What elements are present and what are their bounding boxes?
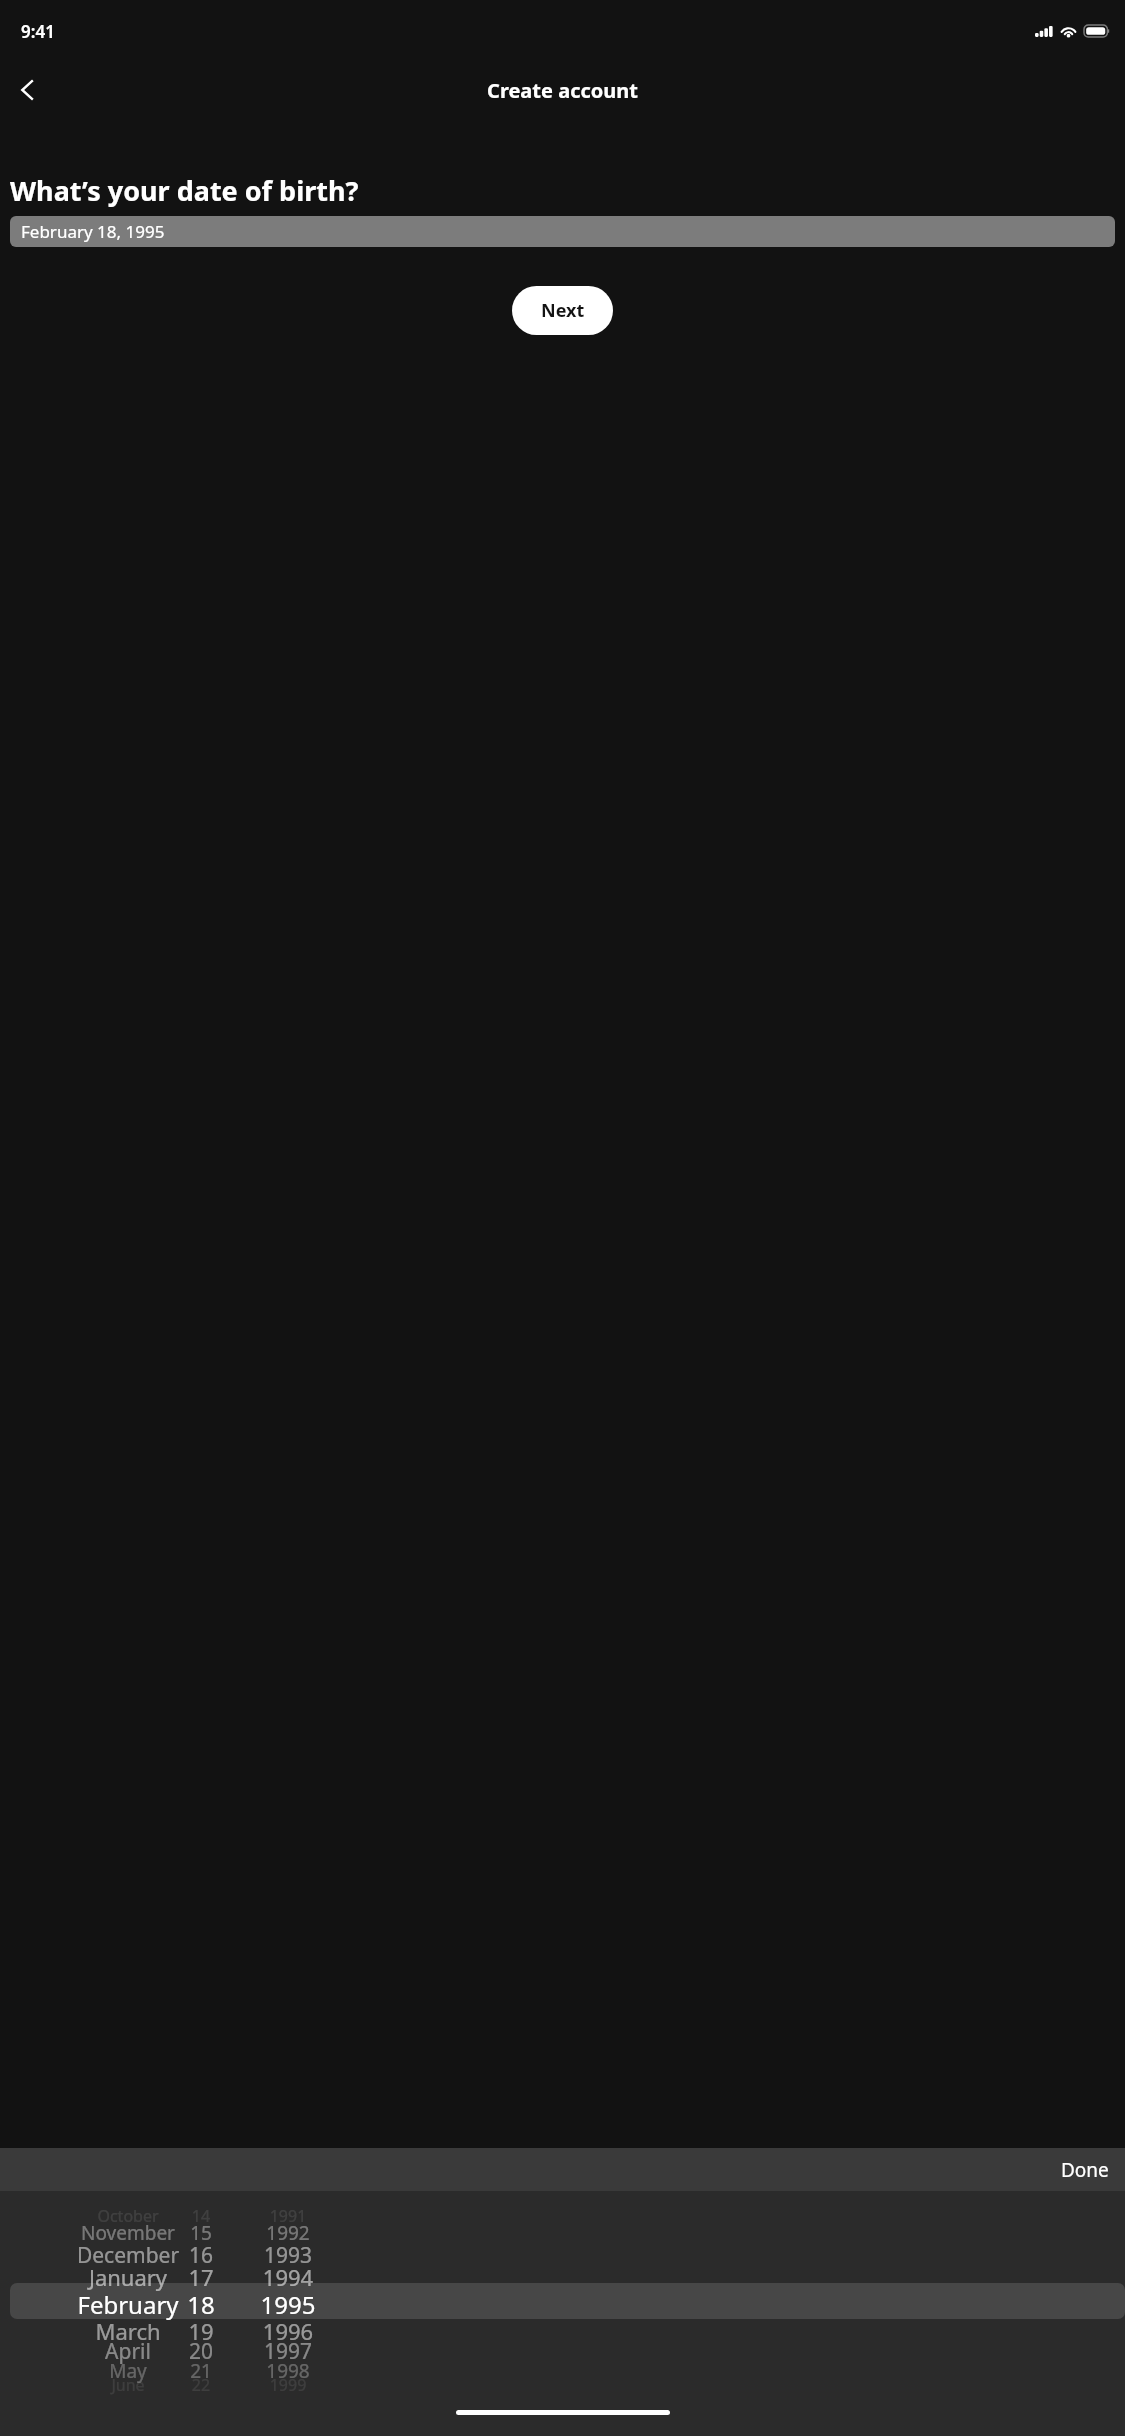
staticText: 14 bbox=[176, 2205, 226, 2227]
staticText: November bbox=[38, 2220, 218, 2246]
staticText: Next bbox=[541, 298, 585, 323]
staticText: 15 bbox=[176, 2220, 226, 2246]
staticText: 1994 bbox=[238, 2262, 338, 2292]
staticText: December bbox=[38, 2241, 218, 2270]
staticText: 22 bbox=[176, 2374, 226, 2396]
button[interactable]: Done bbox=[1045, 2151, 1125, 2189]
staticText: 9:41 bbox=[21, 20, 55, 43]
staticText: February 18, 1995 bbox=[21, 220, 165, 243]
staticText: 19 bbox=[176, 2316, 226, 2346]
button[interactable]: Back bbox=[4, 66, 52, 114]
staticText: Done bbox=[1061, 2157, 1109, 2183]
staticText: 1991 bbox=[238, 2205, 338, 2227]
staticText: 20 bbox=[176, 2337, 226, 2366]
staticText: 1993 bbox=[238, 2241, 338, 2270]
staticText: June bbox=[38, 2374, 218, 2396]
staticText: March bbox=[38, 2316, 218, 2346]
staticText: 1995 bbox=[238, 2288, 338, 2321]
button[interactable]: February 18, 1995 bbox=[10, 216, 1115, 247]
staticText: Create account bbox=[0, 77, 1125, 104]
staticText: 21 bbox=[176, 2358, 226, 2384]
staticText: 16 bbox=[176, 2241, 226, 2270]
staticText: May bbox=[38, 2358, 218, 2384]
staticText: 18 bbox=[176, 2288, 226, 2321]
button[interactable]: Next bbox=[512, 286, 613, 335]
staticText: October bbox=[38, 2205, 218, 2227]
staticText: What’s your date of birth? bbox=[10, 172, 359, 209]
staticText: 17 bbox=[176, 2262, 226, 2292]
staticText: January bbox=[38, 2262, 218, 2292]
staticText: April bbox=[38, 2337, 218, 2366]
staticText: 1996 bbox=[238, 2316, 338, 2346]
staticText: 1999 bbox=[238, 2374, 338, 2396]
staticText: 1998 bbox=[238, 2358, 338, 2384]
staticText: February bbox=[38, 2288, 218, 2321]
staticText: 1997 bbox=[238, 2337, 338, 2366]
staticText: 1992 bbox=[238, 2220, 338, 2246]
